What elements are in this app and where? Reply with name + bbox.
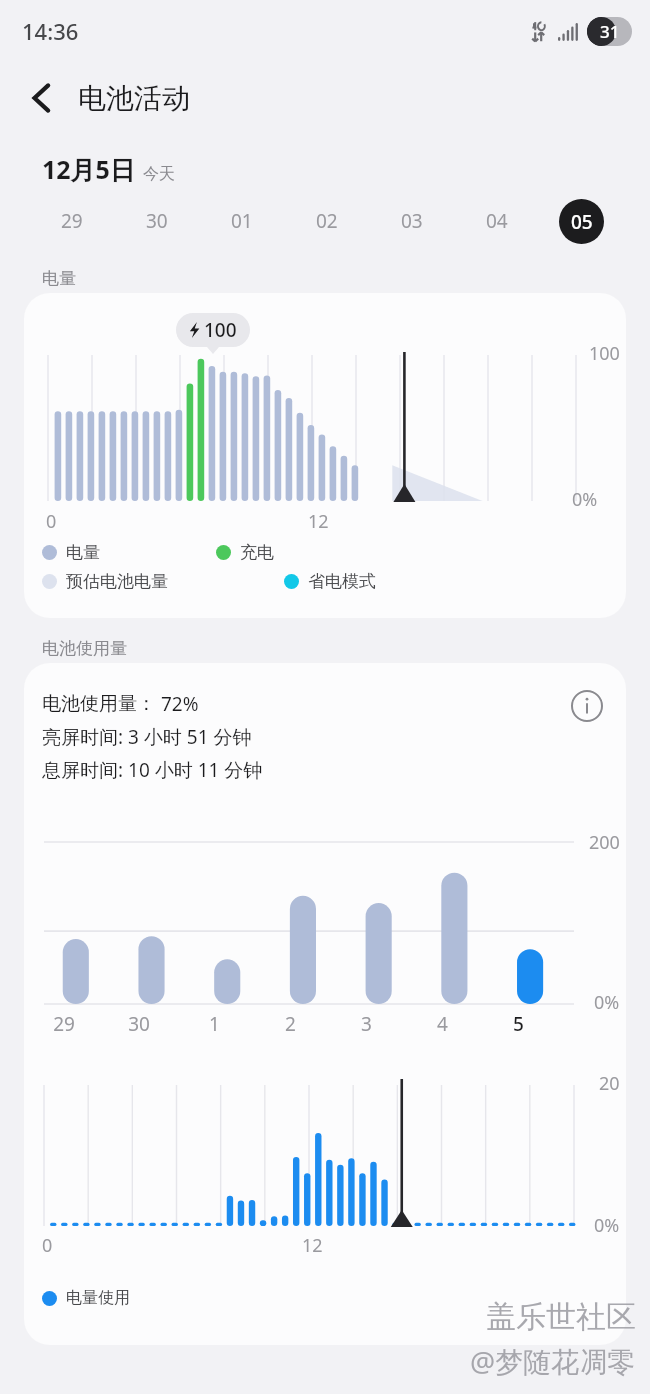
staticText: 预估电池电量 [66, 571, 168, 592]
button[interactable]: Information [562, 681, 612, 731]
button[interactable]: 02 [284, 186, 369, 256]
staticText: 72% [156, 691, 199, 717]
staticText: 息屏时间: 10 小时 11 分钟 [42, 757, 263, 783]
staticText: 电量 [42, 268, 76, 289]
staticText: 电量 [66, 542, 100, 563]
staticText: 20 [599, 1071, 620, 1096]
staticText: 30 [146, 208, 168, 234]
staticText: 电池使用量： [42, 692, 156, 716]
staticText: 12 [308, 509, 329, 534]
staticText: 29 [61, 208, 83, 234]
staticText: 200 [589, 830, 620, 855]
staticText: 100 [589, 341, 620, 366]
staticText: 100 [204, 317, 237, 343]
button[interactable]: 30 [114, 186, 199, 256]
staticText: 0% [594, 1213, 620, 1238]
staticText: 1 [209, 1011, 220, 1037]
staticText: 省电模式 [308, 571, 376, 592]
staticText: 盖乐世社区 [486, 1298, 636, 1336]
staticText: 亮屏时间: 3 小时 51 分钟 [42, 724, 252, 750]
staticText: 01 [231, 208, 253, 234]
staticText: 12月5日 [42, 152, 135, 186]
staticText: 0% [572, 487, 598, 512]
staticText: 03 [401, 208, 423, 234]
staticText: 29 [53, 1011, 75, 1037]
staticText: 2 [285, 1011, 296, 1037]
button[interactable]: 04 [454, 186, 539, 256]
staticText: 04 [486, 208, 508, 234]
staticText: 30 [128, 1011, 150, 1037]
button[interactable]: Back [14, 70, 70, 126]
staticText: 4 [437, 1011, 448, 1037]
staticText: 0% [594, 990, 620, 1015]
staticText: 充电 [240, 542, 274, 563]
staticText: 14:36 [22, 16, 79, 46]
staticText: 0 [42, 1233, 53, 1258]
staticText: 3 [361, 1011, 372, 1037]
button[interactable]: 05 [539, 186, 624, 256]
staticText: 05 [571, 209, 593, 235]
button[interactable]: 29 [30, 186, 114, 256]
button[interactable]: 01 [199, 186, 284, 256]
staticText: 电量使用 [66, 1288, 130, 1308]
staticText: 5 [513, 1011, 524, 1037]
staticText: 电池活动 [78, 81, 190, 116]
staticText: 今天 [143, 164, 175, 184]
staticText: 12 [302, 1233, 323, 1258]
staticText: @梦随花凋零 [470, 1342, 636, 1380]
button[interactable]: 03 [369, 186, 454, 256]
button[interactable]: 电池使用量： [24, 663, 626, 1345]
staticText: 电池使用量 [42, 638, 127, 659]
staticText: 0 [46, 509, 57, 534]
button[interactable]: 100 [24, 293, 626, 618]
staticText: 02 [316, 208, 338, 234]
staticText: 31 [600, 20, 620, 43]
